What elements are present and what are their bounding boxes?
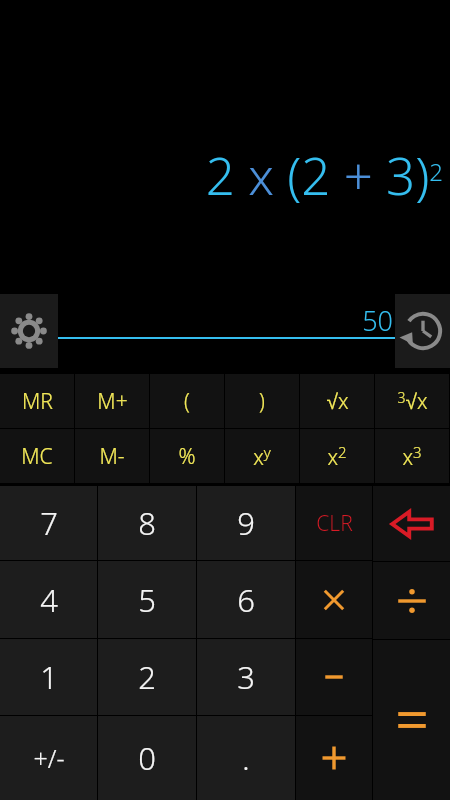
- button[interactable]: Plus: [296, 716, 372, 800]
- staticText: 1: [40, 656, 58, 698]
- button[interactable]: MC: [0, 429, 74, 483]
- staticText: 6: [237, 579, 255, 621]
- button[interactable]: x2: [300, 429, 374, 483]
- staticText: .: [242, 738, 250, 779]
- button[interactable]: (: [150, 374, 224, 428]
- button[interactable]: Minus: [296, 639, 372, 715]
- staticText: x3: [402, 442, 422, 471]
- button[interactable]: CLR: [296, 486, 372, 560]
- button[interactable]: 5: [98, 561, 196, 638]
- staticText: 8: [138, 502, 156, 544]
- button[interactable]: Divide: [373, 562, 450, 639]
- staticText: 2 x (2 + 3)2: [0, 140, 443, 209]
- button[interactable]: Equals: [373, 640, 450, 800]
- staticText: 50: [58, 302, 393, 339]
- button[interactable]: Backspace: [373, 486, 450, 561]
- staticText: CLR: [316, 509, 353, 538]
- button[interactable]: +/-: [0, 716, 97, 800]
- staticText: 7: [40, 502, 58, 544]
- button[interactable]: 3: [197, 639, 295, 715]
- staticText: 0: [138, 737, 156, 779]
- button[interactable]: √x: [300, 374, 374, 428]
- button[interactable]: 9: [197, 486, 295, 560]
- button[interactable]: 0: [98, 716, 196, 800]
- button[interactable]: M-: [75, 429, 149, 483]
- button[interactable]: 1: [0, 639, 97, 715]
- staticText: 5: [138, 579, 156, 621]
- button[interactable]: MR: [0, 374, 74, 428]
- staticText: M+: [97, 387, 128, 416]
- button[interactable]: 4: [0, 561, 97, 638]
- button[interactable]: History: [395, 294, 450, 368]
- button[interactable]: M+: [75, 374, 149, 428]
- staticText: +/-: [33, 741, 65, 775]
- button[interactable]: 7: [0, 486, 97, 560]
- staticText: 3: [237, 656, 255, 698]
- staticText: M-: [99, 442, 125, 471]
- staticText: (: [184, 387, 190, 416]
- staticText: %: [178, 442, 196, 471]
- staticText: xy: [253, 442, 271, 471]
- staticText: 4: [40, 579, 58, 621]
- button[interactable]: .: [197, 716, 295, 800]
- staticText: x2: [327, 442, 347, 471]
- button[interactable]: 6: [197, 561, 295, 638]
- button[interactable]: x3: [375, 429, 449, 483]
- button[interactable]: Multiply: [296, 561, 372, 638]
- staticText: 2: [138, 656, 156, 698]
- button[interactable]: ): [225, 374, 299, 428]
- staticText: MR: [22, 387, 53, 416]
- button[interactable]: %: [150, 429, 224, 483]
- button[interactable]: 8: [98, 486, 196, 560]
- staticText: 3√x: [397, 387, 428, 416]
- staticText: MC: [21, 442, 53, 471]
- button[interactable]: xy: [225, 429, 299, 483]
- button[interactable]: 3√x: [375, 374, 449, 428]
- button[interactable]: Settings: [0, 294, 58, 368]
- staticText: √x: [326, 387, 349, 416]
- staticText: 9: [237, 502, 255, 544]
- staticText: ): [259, 387, 265, 416]
- button[interactable]: 2: [98, 639, 196, 715]
